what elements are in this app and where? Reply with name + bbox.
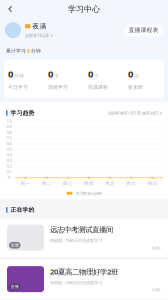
button[interactable]: 返回 — [3, 1, 18, 16]
staticText: 0 — [8, 67, 13, 80]
staticText: 参加班 — [128, 84, 143, 90]
button[interactable]: 直播课程表 — [124, 24, 163, 36]
staticText: 正在学的 — [11, 206, 35, 214]
staticText: 连续学习 — [48, 84, 68, 90]
staticText: 0.6 — [6, 140, 11, 146]
staticText: 0.4 — [6, 152, 11, 157]
staticText: 直播 — [11, 243, 19, 248]
staticText: 学习中心 — [68, 4, 100, 14]
staticText: 0 — [8, 174, 10, 180]
staticText: 今日学习 — [8, 84, 28, 90]
staticText: 0.0% — [152, 287, 161, 293]
staticText: 0.7 — [6, 135, 11, 140]
staticText: 周二 — [42, 181, 52, 186]
staticText: 0.8 — [6, 129, 11, 135]
button[interactable]: 全部学习记录 — [25, 33, 53, 38]
staticText: 个 — [94, 73, 99, 79]
staticText: 周三 — [63, 181, 73, 186]
staticText: 有效期：9982天内完成复学习 — [50, 237, 102, 243]
staticText: 完成课程 — [88, 84, 108, 90]
staticText: 累计学习 — [6, 48, 27, 54]
staticText: 0.2 — [6, 163, 11, 169]
button[interactable]: 2025年08月17日 至 08月23日 — [108, 110, 162, 116]
staticText: 0 — [48, 67, 53, 80]
staticText: 0 — [88, 67, 93, 80]
staticText: 周日 — [147, 181, 157, 186]
staticText: 0.0% — [152, 245, 161, 251]
staticText: 远志中考测试直播间 — [50, 225, 113, 234]
staticText: 0.3 — [6, 157, 11, 163]
staticText: 1.0 — [6, 118, 11, 124]
staticText: 0.1 — [6, 168, 11, 174]
staticText: 次 — [134, 73, 139, 79]
staticText: 周四 — [84, 181, 94, 186]
staticText: 学习趋势 — [11, 109, 35, 117]
staticText: 0 — [128, 67, 133, 80]
staticText: 周六 — [126, 181, 136, 186]
staticText: 天 — [54, 73, 59, 79]
staticText: 20夏高二物理好学2班 — [50, 267, 118, 277]
staticText: 直播 — [11, 284, 19, 289]
staticText: 周一 — [21, 181, 31, 186]
staticText: 周五 — [105, 181, 115, 186]
staticText: 分钟 — [30, 48, 41, 54]
button[interactable]: 直播 — [0, 219, 168, 257]
button[interactable]: 直播 — [0, 260, 168, 299]
staticText: 直播课程表 — [128, 26, 158, 34]
staticText: 0.5 — [6, 146, 11, 152]
staticText: 有效期：9982天内完成复学习 — [50, 280, 102, 286]
staticText: 夜满 — [32, 22, 46, 30]
staticText: 0 — [27, 47, 30, 55]
staticText: 全部学习记录 — [25, 33, 49, 38]
staticText: 0.9 — [6, 123, 11, 129]
staticText: 学习时长(分钟) — [75, 190, 101, 196]
staticText: 分钟 — [14, 73, 24, 79]
staticText: 2025年08月17日 至 08月23日 — [108, 110, 158, 116]
